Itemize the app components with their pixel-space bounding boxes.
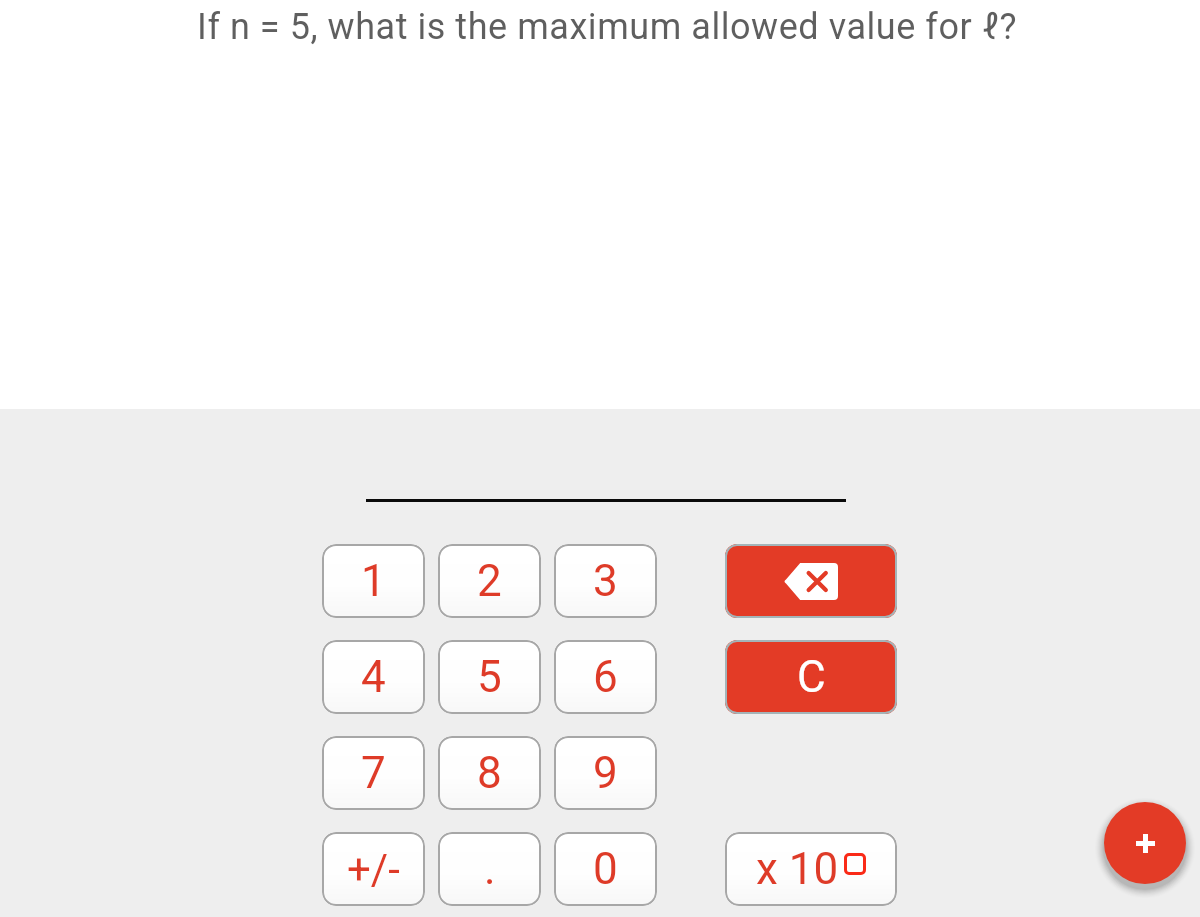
button[interactable]: 1 — [322, 544, 425, 618]
staticText: +/- — [347, 845, 400, 894]
button[interactable]: 5 — [438, 640, 541, 714]
staticText: 1 — [361, 555, 386, 607]
button[interactable]: Backspace — [725, 544, 897, 618]
button[interactable]: 4 — [322, 640, 425, 714]
staticText: 0 — [593, 843, 618, 895]
button[interactable]: C — [725, 640, 897, 714]
staticText: 9 — [593, 747, 618, 799]
button[interactable]: x 10 — [725, 832, 897, 906]
staticText: 5 — [477, 651, 502, 703]
staticText: x 10 — [756, 843, 839, 895]
button[interactable]: 3 — [554, 544, 657, 618]
staticText: 7 — [361, 747, 386, 799]
button[interactable]: 6 — [554, 640, 657, 714]
staticText: 4 — [361, 651, 386, 703]
staticText: C — [797, 651, 826, 703]
staticText: 8 — [477, 747, 502, 799]
button[interactable]: 0 — [554, 832, 657, 906]
staticText: . — [484, 843, 496, 895]
staticText: 6 — [593, 651, 618, 703]
button[interactable]: 9 — [554, 736, 657, 810]
button[interactable]: 8 — [438, 736, 541, 810]
button[interactable]: 2 — [438, 544, 541, 618]
button[interactable]: +/- — [322, 832, 425, 906]
button[interactable]: 7 — [322, 736, 425, 810]
staticText: 3 — [593, 555, 618, 607]
staticText: If n = 5, what is the maximum allowed va… — [7, 6, 1200, 48]
button[interactable]: Add — [1104, 802, 1186, 884]
staticText: 2 — [477, 555, 502, 607]
button[interactable]: . — [438, 832, 541, 906]
